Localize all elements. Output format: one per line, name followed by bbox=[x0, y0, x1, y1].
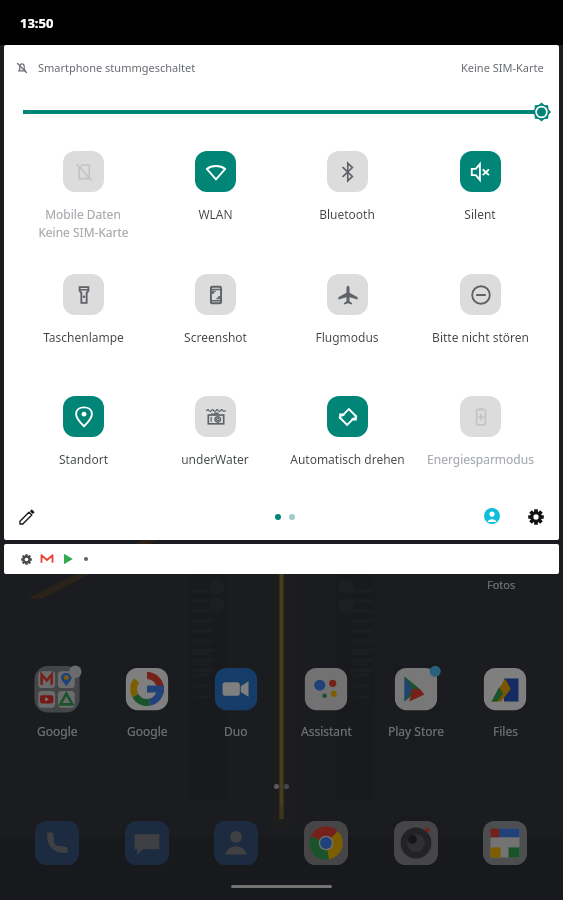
button[interactable]: User account bbox=[474, 498, 510, 534]
staticText: Assistant bbox=[301, 723, 352, 739]
staticText: Google bbox=[127, 723, 168, 739]
button[interactable]: Assistant bbox=[281, 666, 371, 739]
button[interactable]: Screenshot bbox=[149, 274, 281, 345]
button[interactable]: Bitte nicht stören bbox=[414, 274, 546, 345]
staticText: Automatisch drehen bbox=[290, 451, 405, 467]
staticText: Energiesparmodus bbox=[427, 451, 534, 467]
button[interactable]: WLAN bbox=[149, 151, 281, 222]
staticText: 13:50 bbox=[20, 14, 54, 32]
staticText: Play Store bbox=[388, 723, 444, 739]
button[interactable]: Silent bbox=[414, 151, 546, 222]
staticText: Keine SIM-Karte bbox=[38, 224, 129, 240]
button[interactable]: Settings bbox=[518, 499, 554, 535]
staticText: underWater bbox=[181, 451, 249, 467]
button[interactable]: Standort bbox=[17, 396, 149, 467]
button[interactable]: Phone bbox=[35, 821, 79, 865]
button[interactable]: Chrome bbox=[304, 821, 348, 865]
staticText: WLAN bbox=[198, 206, 233, 222]
staticText: Smartphone stummgeschaltet bbox=[38, 60, 196, 75]
staticText: Bitte nicht stören bbox=[432, 329, 529, 345]
button[interactable]: Contacts bbox=[214, 821, 258, 865]
button[interactable]: Edit bbox=[9, 499, 45, 535]
staticText: Bluetooth bbox=[319, 206, 375, 222]
staticText: Google bbox=[37, 723, 78, 739]
staticText: Standort bbox=[59, 451, 108, 467]
button[interactable]: Files bbox=[460, 666, 550, 739]
button[interactable]: Mobile Daten bbox=[17, 151, 149, 240]
staticText: Keine SIM-Karte bbox=[461, 60, 544, 75]
staticText: Mobile Daten bbox=[45, 206, 121, 222]
button[interactable]: Flugmodus bbox=[281, 274, 413, 345]
button[interactable]: Camera bbox=[394, 821, 438, 865]
staticText: Duo bbox=[224, 723, 248, 739]
button[interactable]: Duo bbox=[191, 666, 281, 739]
button[interactable]: Google bbox=[102, 666, 192, 739]
button[interactable]: Play Store bbox=[371, 666, 461, 739]
button[interactable]: Automatisch drehen bbox=[281, 396, 413, 467]
staticText: Silent bbox=[464, 206, 496, 222]
button[interactable]: Messages bbox=[125, 821, 169, 865]
button[interactable]: underWater bbox=[149, 396, 281, 467]
staticText: Screenshot bbox=[184, 329, 247, 345]
button[interactable]: Energiesparmodus bbox=[414, 396, 546, 467]
staticText: Flugmodus bbox=[315, 329, 379, 345]
button[interactable]: Taschenlampe bbox=[17, 274, 149, 345]
staticText: Files bbox=[493, 723, 518, 739]
button[interactable]: Calendar bbox=[483, 821, 527, 865]
staticText: Fotos bbox=[487, 577, 516, 592]
button[interactable]: Google bbox=[12, 666, 102, 739]
button[interactable]: Bluetooth bbox=[281, 151, 413, 222]
staticText: Taschenlampe bbox=[43, 329, 124, 345]
